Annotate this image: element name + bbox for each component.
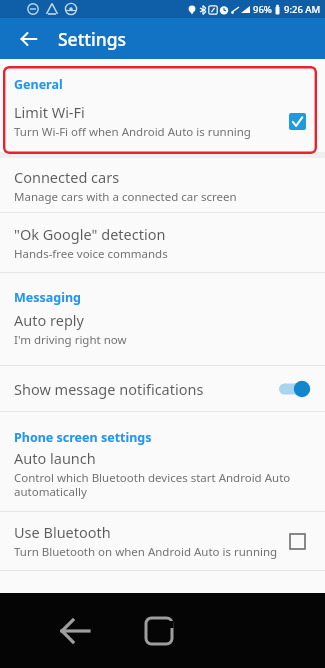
staticText: Turn Bluetooth on when Android Auto is r… — [14, 544, 278, 560]
button[interactable]: Back — [48, 604, 102, 658]
staticText: 9:26 AM — [284, 3, 321, 16]
staticText: Auto reply — [14, 310, 84, 330]
staticText: 96% — [253, 3, 272, 16]
button[interactable]: Use Bluetooth checkbox, unchecked — [282, 526, 312, 556]
staticText: "Ok Google" detection — [14, 224, 166, 244]
button[interactable]: Show message notifications switch, on — [273, 374, 315, 404]
staticText: Control which Bluetooth devices start An… — [14, 470, 295, 499]
staticText: Hands-free voice commands — [14, 246, 168, 262]
staticText: General — [14, 76, 63, 93]
staticText: Turn Wi-Fi off when Android Auto is runn… — [14, 124, 251, 140]
staticText: Settings — [58, 27, 127, 51]
button[interactable]: Auto launch — [0, 446, 325, 508]
button[interactable]: "Ok Google" detection — [0, 214, 325, 271]
staticText: Manage cars with a connected car screen — [14, 189, 237, 205]
staticText: I'm driving right now — [14, 332, 127, 348]
staticText: Auto launch — [14, 448, 96, 468]
button[interactable]: Limit Wi-Fi checkbox, checked — [282, 106, 312, 136]
button[interactable]: Auto reply — [0, 306, 325, 352]
staticText: Phone screen settings — [14, 429, 152, 446]
staticText: Connected cars — [14, 167, 120, 187]
staticText: Messaging — [14, 289, 81, 306]
button[interactable]: Use Bluetooth — [0, 514, 325, 568]
staticText: Use Bluetooth — [14, 522, 111, 542]
button[interactable]: Back — [10, 20, 48, 58]
button[interactable]: Connected cars — [0, 158, 325, 213]
staticText: Show message notifications — [14, 379, 273, 399]
button[interactable]: Show message notifications — [0, 366, 325, 411]
button[interactable]: Home — [132, 604, 186, 658]
staticText: Limit Wi-Fi — [14, 102, 85, 122]
button[interactable]: Limit Wi-Fi — [0, 93, 325, 149]
